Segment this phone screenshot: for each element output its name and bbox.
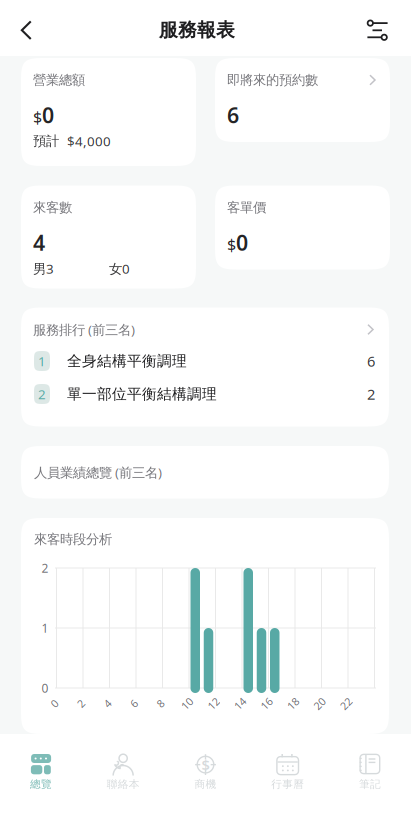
- staticText: 營業總額: [33, 72, 85, 88]
- staticText: 行事曆: [271, 778, 304, 791]
- staticText: 服務排行 (前三名): [33, 321, 135, 338]
- staticText: $4,000: [67, 132, 111, 150]
- staticText: 4: [33, 228, 45, 257]
- staticText: 預計: [33, 133, 59, 149]
- staticText: 即將來的預約數: [227, 72, 318, 88]
- button[interactable]: 筆記: [329, 734, 411, 815]
- staticText: 服務報表: [159, 18, 235, 41]
- staticText: 12: [207, 696, 219, 711]
- staticText: 2: [41, 560, 48, 576]
- staticText: 男3: [33, 260, 54, 277]
- button[interactable]: 人員業績總覽 (前三名): [21, 446, 389, 498]
- button[interactable]: 總覽: [0, 734, 82, 815]
- staticText: 來客時段分析: [34, 531, 112, 547]
- staticText: 人員業績總覽 (前三名): [34, 463, 162, 481]
- button[interactable]: 2: [21, 377, 389, 410]
- staticText: 2: [367, 384, 375, 404]
- staticText: 單一部位平衡結構調理: [67, 385, 217, 403]
- button[interactable]: $: [164, 734, 247, 815]
- staticText: 2: [78, 696, 84, 711]
- button[interactable]: Filter: [355, 8, 399, 52]
- staticText: 4: [104, 696, 110, 711]
- staticText: 總覽: [30, 778, 52, 791]
- staticText: 商機: [194, 778, 216, 791]
- staticText: 0: [41, 680, 48, 696]
- staticText: 18: [287, 696, 299, 711]
- staticText: 6: [227, 101, 239, 129]
- staticText: 客單價: [227, 199, 266, 216]
- staticText: 16: [260, 696, 272, 711]
- staticText: 2: [38, 385, 46, 403]
- staticText: $: [201, 755, 209, 774]
- button[interactable]: 1: [21, 344, 389, 377]
- staticText: 0: [51, 696, 57, 711]
- staticText: 14: [234, 696, 246, 711]
- staticText: 22: [340, 696, 352, 711]
- staticText: 10: [181, 696, 193, 711]
- button[interactable]: 行事曆: [247, 734, 329, 815]
- button[interactable]: Back: [4, 8, 48, 52]
- staticText: $0: [227, 228, 248, 257]
- staticText: 8: [157, 696, 163, 711]
- staticText: 女0: [109, 260, 130, 277]
- staticText: 6: [367, 351, 375, 371]
- staticText: $0: [33, 101, 54, 129]
- staticText: 1: [38, 352, 46, 370]
- staticText: 全身結構平衡調理: [67, 352, 187, 370]
- staticText: 1: [41, 620, 48, 636]
- staticText: 6: [131, 696, 137, 711]
- staticText: 筆記: [359, 778, 381, 791]
- button[interactable]: 服務排行 (前三名): [21, 307, 389, 351]
- staticText: 來客數: [33, 199, 72, 216]
- staticText: 聯絡本: [107, 778, 140, 791]
- staticText: 20: [313, 696, 325, 711]
- button[interactable]: 聯絡本: [82, 734, 164, 815]
